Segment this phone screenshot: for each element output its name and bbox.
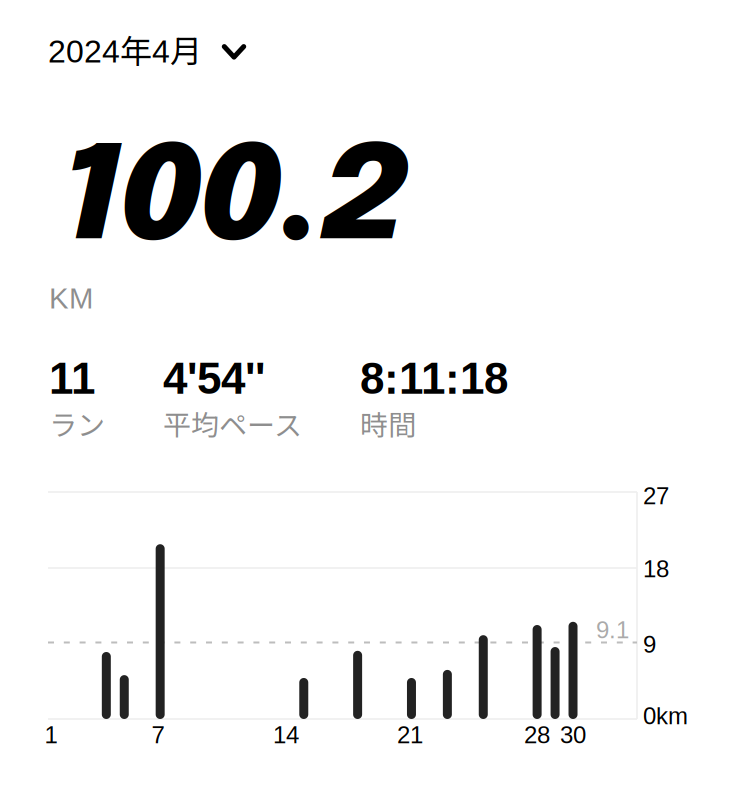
staticText: KM <box>49 282 93 315</box>
staticText: 7 <box>151 722 164 748</box>
staticText: 11 <box>49 354 95 403</box>
staticText: 14 <box>273 722 299 748</box>
button[interactable]: 2024年4月 <box>44 20 256 72</box>
staticText: ラン <box>49 403 105 443</box>
staticText: 18 <box>643 556 669 582</box>
staticText: 27 <box>643 483 669 509</box>
staticText: 100.2 <box>61 136 408 269</box>
staticText: 8:11:18 <box>360 354 508 403</box>
staticText: 28 <box>524 722 550 748</box>
staticText: 時間 <box>360 403 416 443</box>
staticText: 2024年4月 <box>48 26 202 72</box>
staticText: 30 <box>560 722 586 748</box>
staticText: 1 <box>44 722 57 748</box>
staticText: 平均ペース <box>163 403 302 443</box>
staticText: 9 <box>643 631 656 658</box>
staticText: 21 <box>397 722 423 748</box>
staticText: 0km <box>643 703 688 729</box>
staticText: 9.1 <box>596 616 629 643</box>
staticText: 4'54'' <box>163 354 265 403</box>
